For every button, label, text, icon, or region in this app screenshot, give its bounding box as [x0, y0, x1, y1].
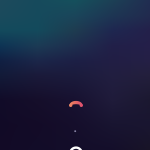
button[interactable]: Home	[69, 146, 83, 150]
button[interactable]: End call	[68, 99, 84, 111]
